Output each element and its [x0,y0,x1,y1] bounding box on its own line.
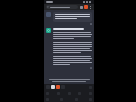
button[interactable]: Tabs [80,6,83,9]
button[interactable] [46,5,78,9]
button[interactable] [53,12,92,22]
button[interactable]: Send [56,85,60,89]
button[interactable]: More options [89,6,92,9]
button[interactable]: Clipboard [51,85,55,89]
button[interactable]: Account [84,5,88,9]
button[interactable]: User avatar [46,12,51,17]
button[interactable]: Assistant avatar [46,28,51,33]
